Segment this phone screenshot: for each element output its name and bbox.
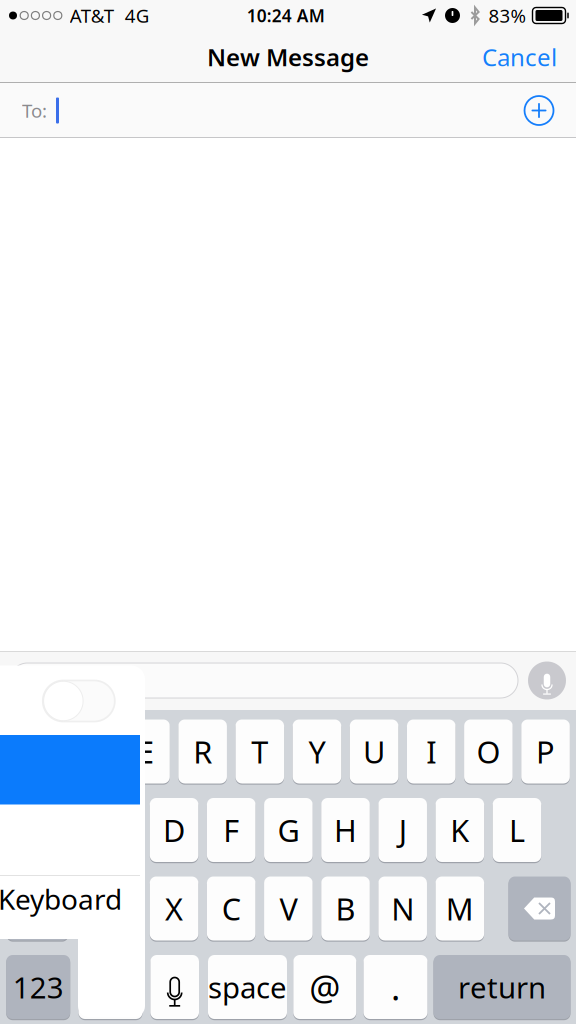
staticText: T [251,731,268,772]
staticText: C [222,888,241,929]
button[interactable]: T [235,719,284,783]
staticText: Z [108,888,126,929]
button[interactable]: D [150,798,198,862]
button[interactable]: K [435,798,484,862]
staticText: N [391,888,414,929]
staticText: return [458,967,546,1006]
button[interactable]: space [208,955,287,1019]
button[interactable]: U [350,719,398,783]
staticText: K [450,810,469,850]
button[interactable]: Q [7,719,55,783]
staticText: Y [308,731,325,772]
button[interactable]: E [121,719,170,783]
staticText: 83% [488,3,526,28]
staticText: W [74,731,103,772]
button[interactable]: Y [293,719,341,783]
staticText: I [426,731,436,772]
staticText: Keyboard [0,880,122,918]
staticText: 123 [13,967,64,1006]
button[interactable]: S [93,798,141,862]
button[interactable]: P [521,719,570,783]
staticText: M [446,888,474,929]
button[interactable]: Delete [508,876,570,940]
button[interactable]: 123 [6,955,70,1019]
staticText: AT&T [70,3,114,28]
staticText: G [277,810,299,850]
button[interactable]: Shift [6,876,68,940]
button[interactable]: Dictation [150,955,199,1019]
staticText: Cancel [482,41,557,73]
button[interactable]: @ [293,955,356,1019]
staticText: E [137,731,154,772]
button[interactable]: Dictate [518,651,576,709]
staticText: D [163,810,185,850]
staticText: F [223,810,239,850]
staticText: 4G [125,3,150,28]
button[interactable]: return [433,955,570,1019]
button[interactable]: B [321,876,370,940]
staticText: B [335,888,355,929]
staticText: O [476,731,500,772]
staticText: . [391,964,400,1010]
button[interactable]: G [264,798,313,862]
button[interactable]: Next keyboard [78,955,142,1019]
button[interactable]: Cancel [482,41,576,73]
staticText: H [334,810,357,850]
staticText: space [208,967,287,1006]
button[interactable]: X [150,876,198,940]
button[interactable]: Add contact [517,88,561,132]
staticText: New Message [207,41,369,73]
button[interactable]: W [64,719,113,783]
staticText: R [193,731,212,772]
button[interactable]: F [207,798,255,862]
staticText: J [399,810,407,850]
button[interactable]: H [321,798,370,862]
staticText: P [536,731,555,772]
button[interactable]: L [493,798,541,862]
button[interactable]: V [264,876,313,940]
button[interactable]: O [464,719,513,783]
staticText: @ [309,964,340,1010]
button[interactable]: . [363,955,427,1019]
button[interactable]: I [407,719,455,783]
button[interactable]: N [378,876,427,940]
staticText: X [165,888,183,929]
button[interactable]: M [435,876,484,940]
staticText: To: [22,98,47,123]
staticText: U [363,731,385,772]
staticText: 10:24 AM [247,4,325,27]
staticText: V [279,888,297,929]
button[interactable]: R [178,719,227,783]
button[interactable]: C [207,876,255,940]
button[interactable]: A [35,798,84,862]
staticText: Q [19,731,43,772]
button[interactable]: Z [93,876,141,940]
staticText: L [509,810,525,850]
button[interactable]: J [378,798,427,862]
